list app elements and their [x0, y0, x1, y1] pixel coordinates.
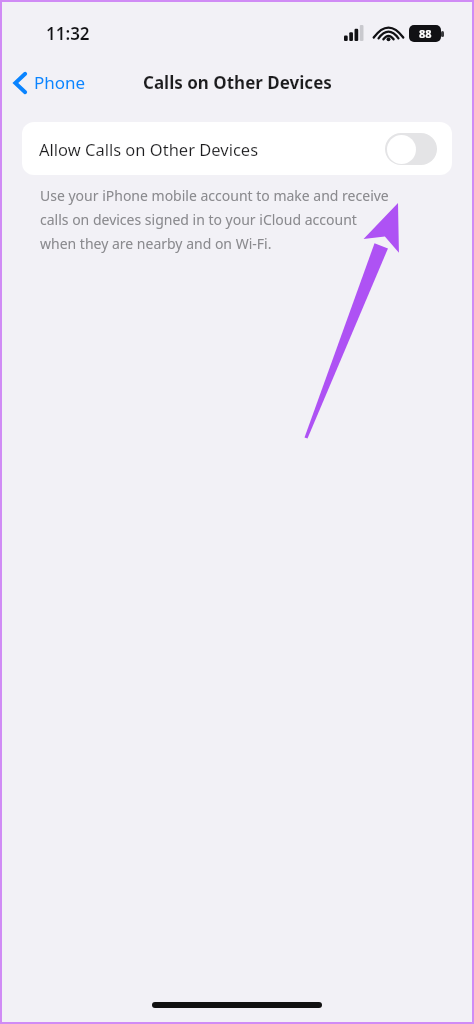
staticText: when they are nearby and on Wi-Fi.: [40, 234, 272, 253]
staticText: Allow Calls on Other Devices: [39, 138, 385, 160]
staticText: calls on devices signed in to your iClou…: [40, 210, 357, 229]
button[interactable]: Phone: [8, 65, 92, 100]
staticText: Phone: [34, 71, 86, 94]
staticText: Calls on Other Devices: [143, 71, 332, 94]
staticText: 88: [419, 26, 432, 41]
button[interactable]: Allow Calls on Other Devices: [22, 122, 452, 175]
staticText: 11:32: [46, 22, 90, 45]
staticText: Use your iPhone mobile account to make a…: [40, 186, 389, 205]
button[interactable]: Allow Calls on Other Devices toggle, off: [385, 133, 437, 165]
